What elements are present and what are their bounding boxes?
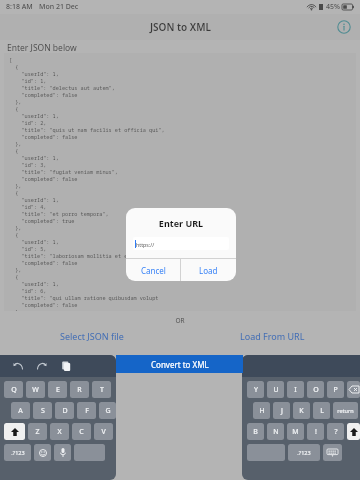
button[interactable]: Hide keyboard [323, 444, 342, 461]
button[interactable]: B [247, 423, 264, 440]
staticText: D [62, 406, 68, 416]
button[interactable]: T [92, 381, 111, 398]
staticText: JSON to XML [150, 20, 211, 34]
button[interactable]: W [26, 381, 45, 398]
staticText: }, [9, 224, 22, 231]
button[interactable]: E [48, 381, 67, 398]
button[interactable]: C [72, 423, 91, 440]
staticText: .?123 [297, 449, 311, 456]
staticText: "id": 4, [9, 203, 47, 210]
staticText: "id": 1, [9, 77, 47, 84]
button[interactable]: R [70, 381, 89, 398]
button[interactable]: V [94, 423, 113, 440]
button[interactable]: ? [327, 423, 344, 440]
staticText: "userId": 1, [9, 196, 59, 203]
staticText: O [313, 385, 319, 395]
button[interactable]: Cancel [126, 259, 180, 281]
button[interactable]: Shift [347, 423, 360, 440]
button[interactable]: O [307, 381, 324, 398]
staticText: "title": "delectus aut autem", [9, 84, 115, 91]
button[interactable]: P [327, 381, 344, 398]
staticText: E [56, 385, 60, 395]
button[interactable]: Y [247, 381, 264, 398]
button[interactable]: ! [307, 423, 324, 440]
button[interactable]: G [99, 402, 116, 419]
button[interactable]: N [267, 423, 284, 440]
staticText: "completed": false [9, 301, 78, 308]
button[interactable]: Convert to XML [116, 355, 243, 373]
button[interactable]: X [50, 423, 69, 440]
staticText: { [9, 147, 19, 154]
button[interactable]: S [33, 402, 52, 419]
button[interactable]: Dictation [54, 444, 71, 461]
staticText: 8:18 AM [6, 2, 33, 12]
staticText: U [273, 385, 279, 395]
staticText: "title": "fugiat veniam minus", [9, 168, 118, 175]
button[interactable]: Load From URL [240, 330, 305, 342]
button[interactable]: D [55, 402, 74, 419]
button[interactable]: https://jsonplaceholder.typicode.com/ [133, 237, 229, 250]
button[interactable]: Z [28, 423, 47, 440]
staticText: return [337, 407, 354, 414]
staticText: ? [334, 427, 338, 437]
staticText: N [273, 427, 279, 437]
staticText: Mon 21 Dec [39, 2, 79, 12]
button[interactable]: return [333, 402, 358, 419]
staticText: A [18, 406, 23, 416]
button[interactable]: Paste [58, 358, 74, 374]
staticText: "completed": false [9, 175, 78, 182]
staticText: OR [0, 316, 360, 325]
staticText: "userId": 1, [9, 238, 59, 245]
staticText: "userId": 1, [9, 70, 59, 77]
staticText: "id": 2, [9, 119, 47, 126]
button[interactable]: .?123 [288, 444, 320, 461]
staticText: "id": 5, [9, 245, 47, 252]
button[interactable]: Undo [10, 358, 26, 374]
staticText: Enter URL [126, 217, 236, 229]
staticText: Load From URL [240, 330, 305, 342]
button[interactable]: [ [4, 53, 356, 311]
staticText: "id": 3, [9, 161, 47, 168]
staticText: { [9, 231, 19, 238]
button[interactable] [247, 444, 285, 461]
staticText: "completed": false [9, 259, 78, 266]
button[interactable]: A [11, 402, 30, 419]
button[interactable]: .?123 [4, 444, 31, 461]
button[interactable]: F [77, 402, 96, 419]
staticText: G [105, 406, 111, 416]
staticText: Z [35, 427, 40, 437]
staticText: { [9, 189, 19, 196]
button[interactable]: K [293, 402, 310, 419]
staticText: 45% [326, 2, 340, 12]
button[interactable]: Emoji [34, 444, 51, 461]
staticText: S [41, 406, 45, 416]
button[interactable]: M [287, 423, 304, 440]
button[interactable]: Q [4, 381, 23, 398]
button[interactable]: L [313, 402, 330, 419]
staticText: M [292, 427, 299, 437]
button[interactable]: Info [334, 17, 354, 37]
staticText: W [32, 385, 39, 395]
button[interactable]: J [273, 402, 290, 419]
staticText: }, [9, 308, 22, 311]
button[interactable]: Shift [4, 423, 25, 440]
staticText: "title": "laboriosam mollitia et enim qu… [9, 252, 162, 259]
button[interactable]: I [287, 381, 304, 398]
staticText: [ [9, 56, 13, 63]
staticText: C [79, 427, 84, 437]
button[interactable]: Delete [347, 381, 360, 398]
button[interactable]: H [253, 402, 270, 419]
staticText: T [100, 385, 104, 395]
button[interactable]: Load [181, 259, 236, 281]
staticText: B [253, 427, 258, 437]
button[interactable]: Redo [34, 358, 50, 374]
staticText: Q [11, 385, 17, 395]
staticText: Load [199, 265, 218, 276]
staticText: F [85, 406, 89, 416]
button[interactable] [74, 444, 105, 461]
staticText: K [299, 406, 304, 416]
button[interactable]: U [267, 381, 284, 398]
button[interactable]: Select JSON file [60, 330, 124, 342]
staticText: L [320, 406, 324, 416]
staticText: "userId": 1, [9, 280, 59, 287]
